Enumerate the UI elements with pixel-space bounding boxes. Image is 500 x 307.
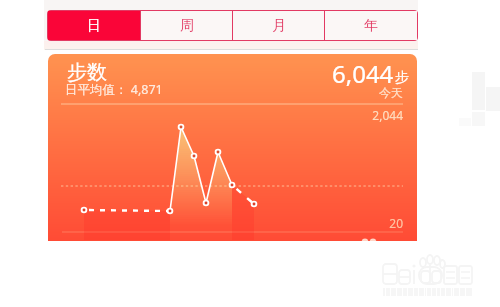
staticText: 步数: [67, 60, 107, 85]
staticText: 20: [343, 215, 403, 231]
staticText: 6,044: [332, 57, 394, 90]
button[interactable]: 年: [325, 11, 417, 40]
staticText: 2,044: [343, 107, 403, 123]
button[interactable]: 月: [233, 11, 324, 40]
button[interactable]: 周: [141, 11, 232, 40]
staticText: 今天: [343, 85, 403, 100]
staticText: 日平均值： 4,871: [65, 81, 163, 98]
staticText: 步: [395, 69, 409, 87]
staticText: 日: [87, 17, 101, 35]
staticText: 年: [364, 17, 378, 35]
button[interactable]: 日: [48, 11, 140, 40]
button[interactable]: Steps chart, 6,044 steps today: [48, 54, 417, 241]
staticText: 周: [180, 17, 194, 35]
staticText: 月: [272, 17, 286, 35]
